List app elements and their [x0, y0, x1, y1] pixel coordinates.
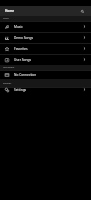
button[interactable] — [0, 87, 91, 95]
staticText: Home — [5, 9, 15, 13]
staticText: Music — [3, 17, 9, 20]
staticText: Demo Songs — [14, 36, 33, 40]
staticText: Settings — [14, 88, 27, 92]
button[interactable] — [0, 21, 91, 32]
staticText: Settings — [3, 82, 12, 85]
staticText: Favorites — [14, 47, 28, 51]
button[interactable] — [0, 70, 91, 78]
button[interactable] — [0, 54, 91, 65]
staticText: No Connection — [14, 73, 37, 77]
staticText: Music — [14, 25, 23, 29]
button[interactable] — [0, 43, 91, 54]
button[interactable] — [0, 32, 91, 43]
staticText: User Songs — [14, 58, 31, 62]
button[interactable]: Search — [78, 7, 87, 16]
staticText: Instrument — [3, 66, 15, 69]
